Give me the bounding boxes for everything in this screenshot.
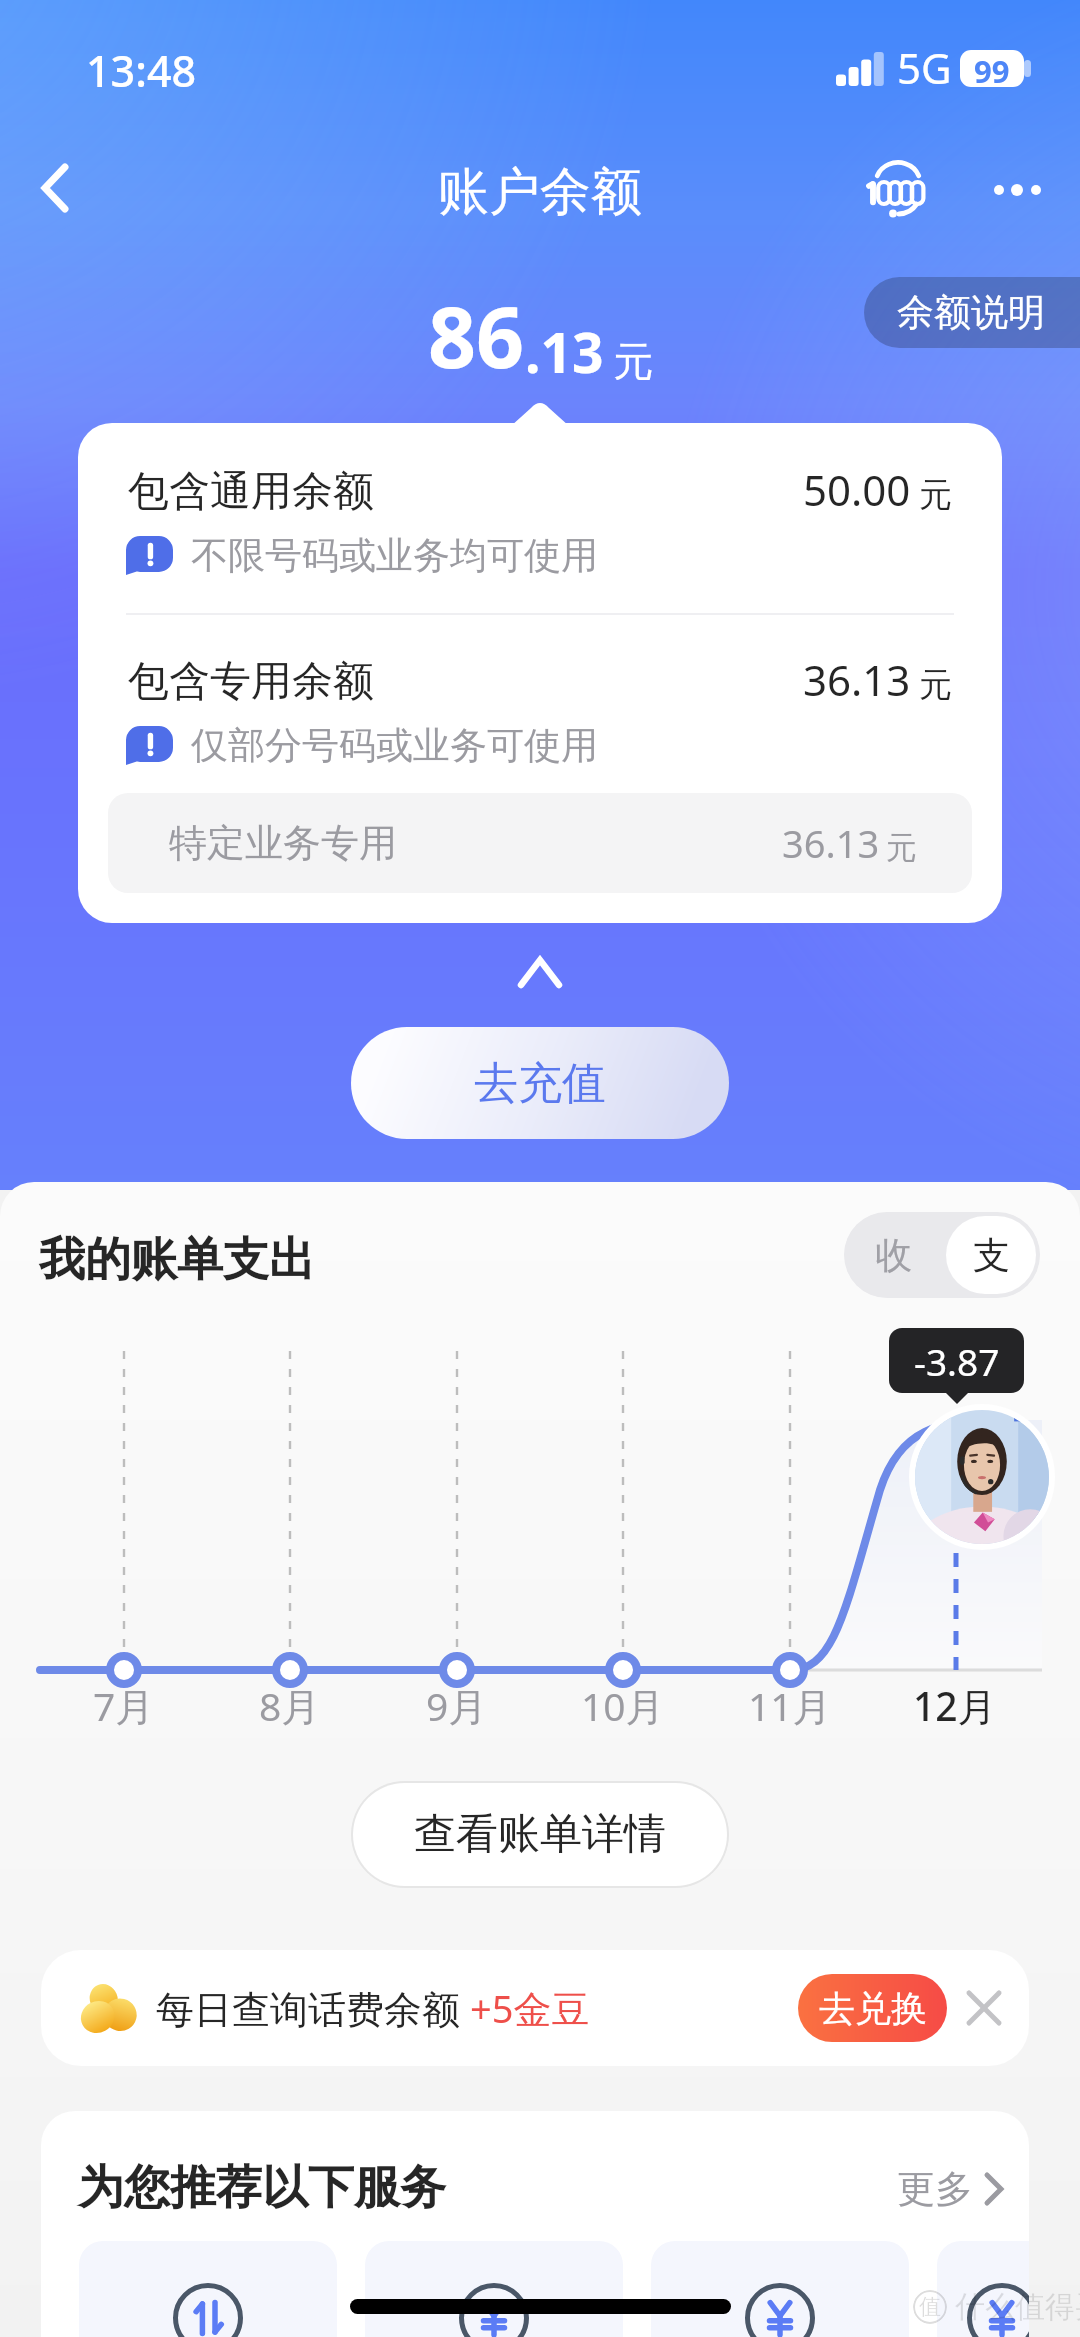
staticText: 更多 [897, 2165, 973, 2213]
button[interactable]: 去充值 [351, 1027, 729, 1139]
staticText: 12月 [913, 1679, 997, 1732]
staticText: 5G [897, 39, 952, 96]
staticText: 包含专用余额 [128, 656, 374, 708]
staticText: -3.87 [914, 1336, 1000, 1386]
staticText: 账户余额 [438, 160, 642, 224]
staticText: 元 [613, 336, 653, 386]
staticText: .13 [525, 314, 604, 389]
staticText: 收 [875, 1232, 912, 1279]
button[interactable]: Collapse [480, 934, 600, 1010]
button[interactable] [651, 2241, 909, 2337]
staticText: 10月 [581, 1679, 665, 1732]
staticText: 36.13 [782, 817, 880, 869]
button[interactable]: Customer service agent [909, 1404, 1055, 1550]
button[interactable]: Customer service 10000 [845, 138, 949, 242]
button[interactable]: 余额说明 [864, 277, 1080, 348]
staticText: 什么值得买 [955, 2288, 1080, 2326]
staticText: 特定业务专用 [169, 819, 397, 867]
button[interactable] [937, 2241, 1029, 2337]
staticText: 余额说明 [897, 289, 1045, 336]
staticText: 去充值 [474, 1056, 606, 1111]
button[interactable]: More options [972, 142, 1068, 238]
button[interactable]: Close [953, 1977, 1015, 2039]
staticText: 9月 [426, 1679, 488, 1732]
staticText: 99 [974, 50, 1010, 87]
staticText: 7月 [93, 1679, 155, 1732]
staticText: 我的账单支出 [39, 1231, 315, 1289]
staticText: 8月 [259, 1679, 321, 1732]
staticText: 13:48 [86, 41, 197, 100]
staticText: 元 [919, 474, 952, 516]
button[interactable]: Back [8, 130, 102, 246]
staticText: 为您推荐以下服务 [78, 2159, 446, 2217]
button[interactable]: 收 [844, 1212, 942, 1298]
staticText: 86 [428, 278, 525, 392]
staticText: +5金豆 [470, 1982, 590, 2034]
button[interactable]: 更多 [897, 2165, 1003, 2213]
button[interactable]: 查看账单详情 [353, 1783, 727, 1886]
staticText: 50.00 [803, 461, 911, 518]
staticText: 元 [919, 664, 952, 706]
staticText: 支 [973, 1232, 1010, 1279]
staticText: 36.13 [803, 651, 911, 708]
staticText: 去兑换 [819, 1986, 927, 2031]
staticText: 包含通用余额 [128, 466, 374, 518]
button[interactable] [365, 2241, 623, 2337]
button[interactable]: 支 [946, 1216, 1036, 1294]
staticText: 每日查询话费余额 [156, 1982, 470, 2034]
button[interactable] [79, 2241, 337, 2337]
button[interactable]: 每日查询话费余额 [41, 1950, 1029, 2066]
staticText: 查看账单详情 [414, 1808, 666, 1861]
button[interactable]: 去兑换 [798, 1974, 947, 2042]
staticText: 仅部分号码或业务可使用 [191, 722, 598, 769]
staticText: 元 [886, 828, 917, 867]
staticText: 值 [919, 2293, 941, 2321]
staticText: 不限号码或业务均可使用 [191, 532, 598, 579]
staticText: 11月 [748, 1679, 832, 1732]
